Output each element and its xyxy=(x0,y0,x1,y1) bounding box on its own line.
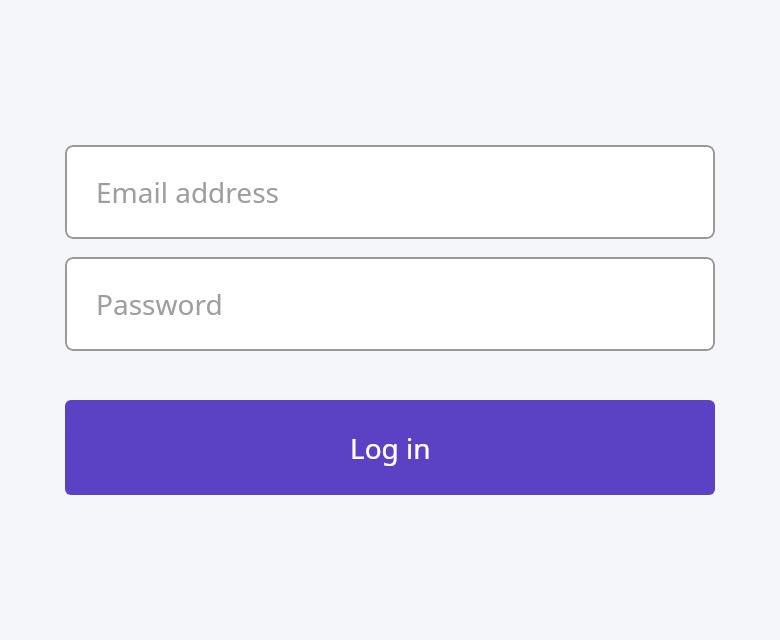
staticText: Email address xyxy=(96,173,279,211)
button[interactable]: Password xyxy=(65,257,715,351)
staticText: Password xyxy=(96,285,223,323)
button[interactable]: Log in xyxy=(65,400,715,495)
staticText: Log in xyxy=(350,429,431,467)
button[interactable]: Email address xyxy=(65,145,715,239)
